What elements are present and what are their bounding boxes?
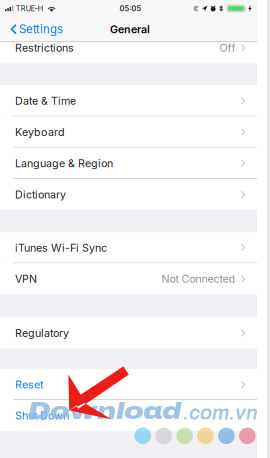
staticText: Restrictions (15, 41, 74, 54)
button[interactable]: iTunes Wi-Fi Sync (0, 232, 257, 263)
button[interactable]: Dictionary (0, 179, 257, 210)
staticText: 05:05 (119, 4, 141, 13)
button[interactable]: Date & Time (0, 85, 257, 116)
staticText: Not Connected (162, 272, 236, 285)
staticText: .com.vn (183, 402, 258, 424)
staticText: Date & Time (15, 94, 76, 107)
staticText: Regulatory (15, 327, 69, 340)
button[interactable]: Regulatory (0, 317, 257, 349)
button[interactable]: Restrictions (0, 32, 257, 64)
staticText: Shut Down (15, 409, 69, 422)
staticText: Settings (19, 22, 63, 36)
staticText: VPN (15, 272, 37, 285)
button[interactable]: Shut Down (0, 400, 257, 431)
button[interactable]: Reset (0, 369, 257, 400)
button[interactable]: VPN (0, 263, 257, 294)
staticText: Reset (15, 378, 43, 391)
staticText: Off (220, 41, 236, 54)
staticText: iTunes Wi-Fi Sync (15, 241, 107, 254)
button[interactable]: Settings (0, 18, 70, 40)
staticText: Keyboard (15, 126, 65, 138)
staticText: General (110, 23, 150, 36)
staticText: Dictionary (15, 188, 66, 201)
staticText: Language & Region (15, 157, 113, 170)
staticText: TRUE-H (16, 4, 43, 13)
button[interactable]: Language & Region (0, 148, 257, 179)
staticText: Download (28, 398, 181, 424)
button[interactable]: Keyboard (0, 116, 257, 148)
